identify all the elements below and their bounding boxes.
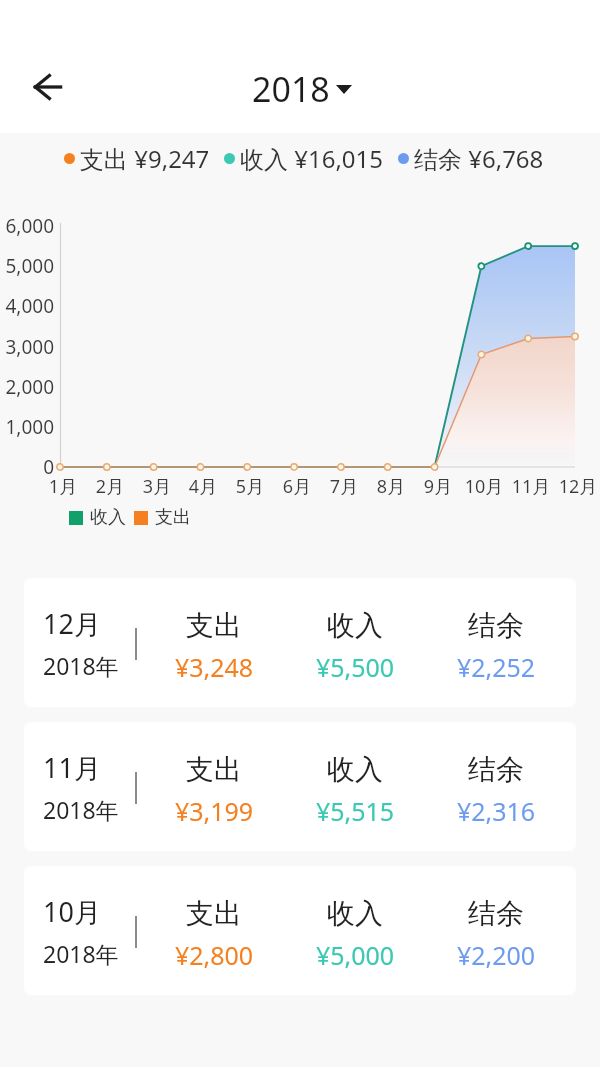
staticText: 收入 bbox=[295, 896, 415, 931]
staticText: 结余 bbox=[436, 896, 556, 931]
staticText: 10月 bbox=[43, 893, 101, 930]
staticText: ¥3,248 bbox=[154, 650, 274, 684]
staticText: 2018年 bbox=[43, 794, 119, 825]
staticText: 2,000 bbox=[2, 374, 54, 400]
button[interactable]: 2018 bbox=[246, 60, 358, 118]
staticText: 3月 bbox=[127, 474, 187, 499]
button[interactable]: 结余 ¥6,768 bbox=[398, 142, 544, 175]
staticText: 6,000 bbox=[2, 213, 54, 239]
staticText: 2018 bbox=[252, 66, 330, 112]
staticText: 结余 bbox=[436, 752, 556, 787]
staticText: 6月 bbox=[267, 474, 327, 499]
staticText: 12月 bbox=[43, 605, 101, 642]
staticText: 1月 bbox=[33, 474, 93, 499]
staticText: ¥2,252 bbox=[436, 650, 556, 684]
staticText: 收入 bbox=[90, 506, 126, 529]
staticText: ¥2,316 bbox=[436, 794, 556, 828]
staticText: 2018年 bbox=[43, 938, 119, 969]
staticText: 5月 bbox=[220, 474, 280, 499]
button[interactable]: 12月 bbox=[24, 578, 576, 707]
staticText: 支出 bbox=[155, 506, 191, 529]
button[interactable]: 10月 bbox=[24, 866, 576, 995]
staticText: ¥5,500 bbox=[295, 650, 415, 684]
staticText: 结余 ¥6,768 bbox=[414, 142, 544, 175]
button[interactable]: 收入 bbox=[69, 506, 191, 529]
button[interactable]: 支出 ¥9,247 bbox=[64, 142, 210, 175]
staticText: ¥2,200 bbox=[436, 938, 556, 972]
staticText: 0 bbox=[2, 454, 54, 480]
staticText: 2月 bbox=[80, 474, 140, 499]
staticText: 11月 bbox=[501, 474, 561, 499]
staticText: 7月 bbox=[314, 474, 374, 499]
staticText: ¥3,199 bbox=[154, 794, 274, 828]
staticText: 4月 bbox=[173, 474, 233, 499]
button[interactable]: Back bbox=[19, 59, 75, 115]
staticText: ¥5,515 bbox=[295, 794, 415, 828]
staticText: 支出 bbox=[154, 608, 274, 643]
staticText: 8月 bbox=[361, 474, 421, 499]
staticText: 收入 bbox=[295, 608, 415, 643]
staticText: 1,000 bbox=[2, 414, 54, 440]
staticText: 收入 bbox=[295, 752, 415, 787]
staticText: ¥5,000 bbox=[295, 938, 415, 972]
staticText: 3,000 bbox=[2, 334, 54, 360]
staticText: 9月 bbox=[408, 474, 468, 499]
staticText: 支出 bbox=[154, 896, 274, 931]
staticText: ¥2,800 bbox=[154, 938, 274, 972]
staticText: 2018年 bbox=[43, 650, 119, 681]
staticText: 12月 bbox=[548, 474, 600, 499]
staticText: 支出 bbox=[154, 752, 274, 787]
button[interactable]: 11月 bbox=[24, 722, 576, 851]
staticText: 支出 ¥9,247 bbox=[80, 142, 210, 175]
staticText: 4,000 bbox=[2, 293, 54, 319]
staticText: 10月 bbox=[454, 474, 514, 499]
staticText: 11月 bbox=[43, 749, 101, 786]
button[interactable]: 收入 ¥16,015 bbox=[224, 142, 384, 175]
staticText: 5,000 bbox=[2, 253, 54, 279]
staticText: 收入 ¥16,015 bbox=[240, 142, 384, 175]
staticText: 结余 bbox=[436, 608, 556, 643]
